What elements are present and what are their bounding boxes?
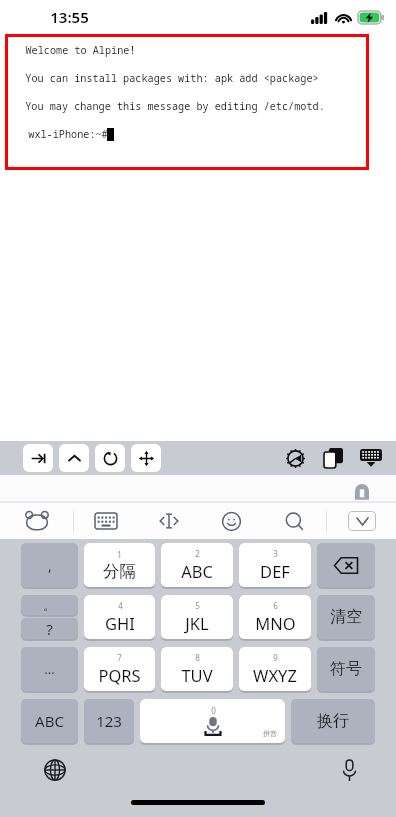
staticText: TUV bbox=[181, 664, 213, 686]
button[interactable]: Cursor bbox=[137, 503, 200, 539]
staticText: JKL bbox=[185, 612, 209, 634]
staticText: 3 bbox=[273, 548, 278, 559]
staticText: You can install packages with: apk add <… bbox=[25, 71, 319, 85]
button[interactable]: Hide keyboard bbox=[354, 444, 388, 472]
staticText: ... bbox=[44, 660, 55, 678]
button[interactable]: Switch language bbox=[40, 755, 70, 785]
staticText: 清空 bbox=[330, 607, 362, 627]
button[interactable]: Clipboard bbox=[316, 444, 350, 472]
staticText: 13:55 bbox=[50, 7, 89, 27]
button[interactable]: 1 bbox=[84, 543, 155, 587]
button[interactable]: Dictation bbox=[334, 755, 364, 785]
button[interactable]: 123 bbox=[84, 699, 134, 743]
button[interactable]: Move cursor bbox=[131, 444, 161, 472]
staticText: ? bbox=[46, 619, 53, 639]
button[interactable]: 清空 bbox=[317, 595, 375, 639]
staticText: 拼音 bbox=[263, 729, 277, 738]
button[interactable]: 2 bbox=[161, 543, 233, 587]
button[interactable]: ABC bbox=[21, 699, 78, 743]
button[interactable]: 3 bbox=[239, 543, 311, 587]
button[interactable]: ... bbox=[21, 647, 78, 691]
staticText: 换行 bbox=[317, 711, 349, 731]
button[interactable]: Voice bbox=[350, 477, 374, 501]
staticText: ABC bbox=[35, 711, 64, 731]
button[interactable]: Shift bbox=[59, 444, 89, 472]
staticText: 4 bbox=[118, 600, 123, 611]
button[interactable]: 。 bbox=[21, 595, 78, 615]
staticText: 1 bbox=[117, 549, 122, 560]
button[interactable]: Collapse bbox=[327, 503, 396, 539]
button[interactable]: 7 bbox=[84, 647, 155, 691]
button[interactable]: Baidu input bbox=[0, 503, 73, 539]
staticText: 2 bbox=[195, 548, 200, 559]
button[interactable]: 换行 bbox=[291, 699, 375, 743]
staticText: Welcome to Alpine! bbox=[25, 43, 136, 57]
button[interactable]: , bbox=[21, 543, 78, 587]
button[interactable]: Settings bbox=[278, 444, 312, 472]
staticText: PQRS bbox=[98, 664, 141, 686]
staticText: 符号 bbox=[330, 659, 362, 679]
staticText: 分隔 bbox=[103, 561, 136, 582]
button[interactable]: Search bbox=[263, 503, 326, 539]
staticText: wxl-iPhone:~# bbox=[25, 127, 111, 141]
button[interactable]: Tab bbox=[23, 444, 53, 472]
staticText: You may change this message by editing /… bbox=[25, 99, 325, 113]
staticText: 8 bbox=[195, 652, 200, 663]
button[interactable]: ? bbox=[21, 618, 78, 639]
button[interactable]: Keyboard layout bbox=[74, 503, 137, 539]
button[interactable]: Emoji bbox=[200, 503, 263, 539]
staticText: GHI bbox=[105, 612, 135, 634]
staticText: 。 bbox=[43, 597, 56, 613]
staticText: 6 bbox=[273, 600, 278, 611]
button[interactable]: Delete bbox=[317, 543, 375, 587]
button[interactable]: 4 bbox=[84, 595, 155, 639]
button[interactable]: 符号 bbox=[317, 647, 375, 691]
staticText: ABC bbox=[181, 560, 213, 582]
staticText: 7 bbox=[117, 652, 122, 663]
staticText: 123 bbox=[96, 711, 122, 731]
button[interactable]: 9 bbox=[239, 647, 311, 691]
button[interactable]: 8 bbox=[161, 647, 233, 691]
staticText: DEF bbox=[260, 560, 290, 582]
staticText: 5 bbox=[195, 600, 200, 611]
staticText: 9 bbox=[273, 652, 278, 663]
button[interactable]: Undo bbox=[95, 444, 125, 472]
button[interactable]: 5 bbox=[161, 595, 233, 639]
staticText: 0 bbox=[211, 705, 216, 716]
button[interactable]: Space bbox=[140, 699, 285, 743]
staticText: MNO bbox=[255, 612, 296, 634]
staticText: WXYZ bbox=[253, 664, 297, 686]
staticText: , bbox=[48, 556, 52, 575]
button[interactable]: 6 bbox=[239, 595, 311, 639]
